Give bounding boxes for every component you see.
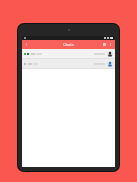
button[interactable]: Search bbox=[102, 42, 107, 47]
staticText: Chats bbox=[63, 42, 74, 47]
button[interactable]: Contact avatar bbox=[22, 49, 115, 58]
button[interactable]: Navigate up bbox=[24, 42, 29, 47]
button[interactable]: More options bbox=[108, 42, 113, 47]
button[interactable]: Contact avatar bbox=[107, 61, 113, 67]
button[interactable]: Contact avatar bbox=[107, 51, 113, 57]
button[interactable]: Contact avatar bbox=[22, 59, 115, 68]
